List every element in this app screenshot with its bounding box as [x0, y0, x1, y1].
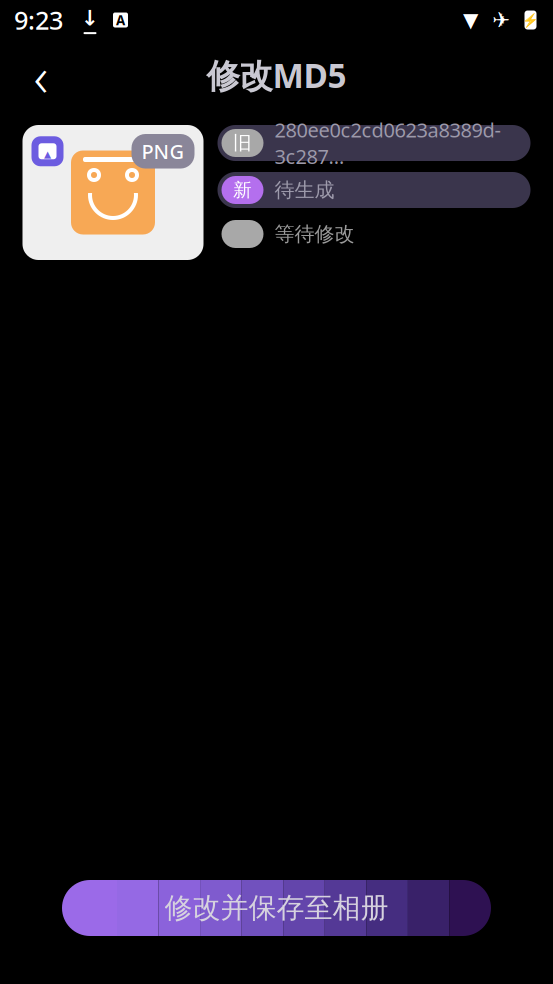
staticText: ▼ [463, 9, 478, 31]
staticText: 9:23 [14, 3, 63, 37]
staticText: 新 [233, 178, 252, 201]
staticText: ✈ [492, 8, 510, 32]
staticText: 待生成 [274, 178, 334, 202]
staticText: ↓ [81, 6, 99, 30]
staticText: 旧 [233, 131, 252, 154]
staticText: PNG [141, 138, 184, 165]
staticText: A [116, 11, 125, 29]
staticText: 等待修改 [274, 222, 354, 246]
staticText: ⚡ [522, 12, 539, 28]
button[interactable]: 修改并保存至相册 [62, 880, 491, 936]
button[interactable]: 已选择的图片 [22, 125, 203, 260]
staticText: ▲ [44, 149, 51, 160]
staticText: 280ee0c2cd0623a8389d3c287… [274, 116, 500, 169]
staticText: ‹ [33, 38, 48, 112]
staticText: 修改MD5 [206, 53, 346, 97]
button[interactable]: 返回 [14, 48, 68, 102]
staticText: 修改并保存至相册 [164, 891, 388, 925]
